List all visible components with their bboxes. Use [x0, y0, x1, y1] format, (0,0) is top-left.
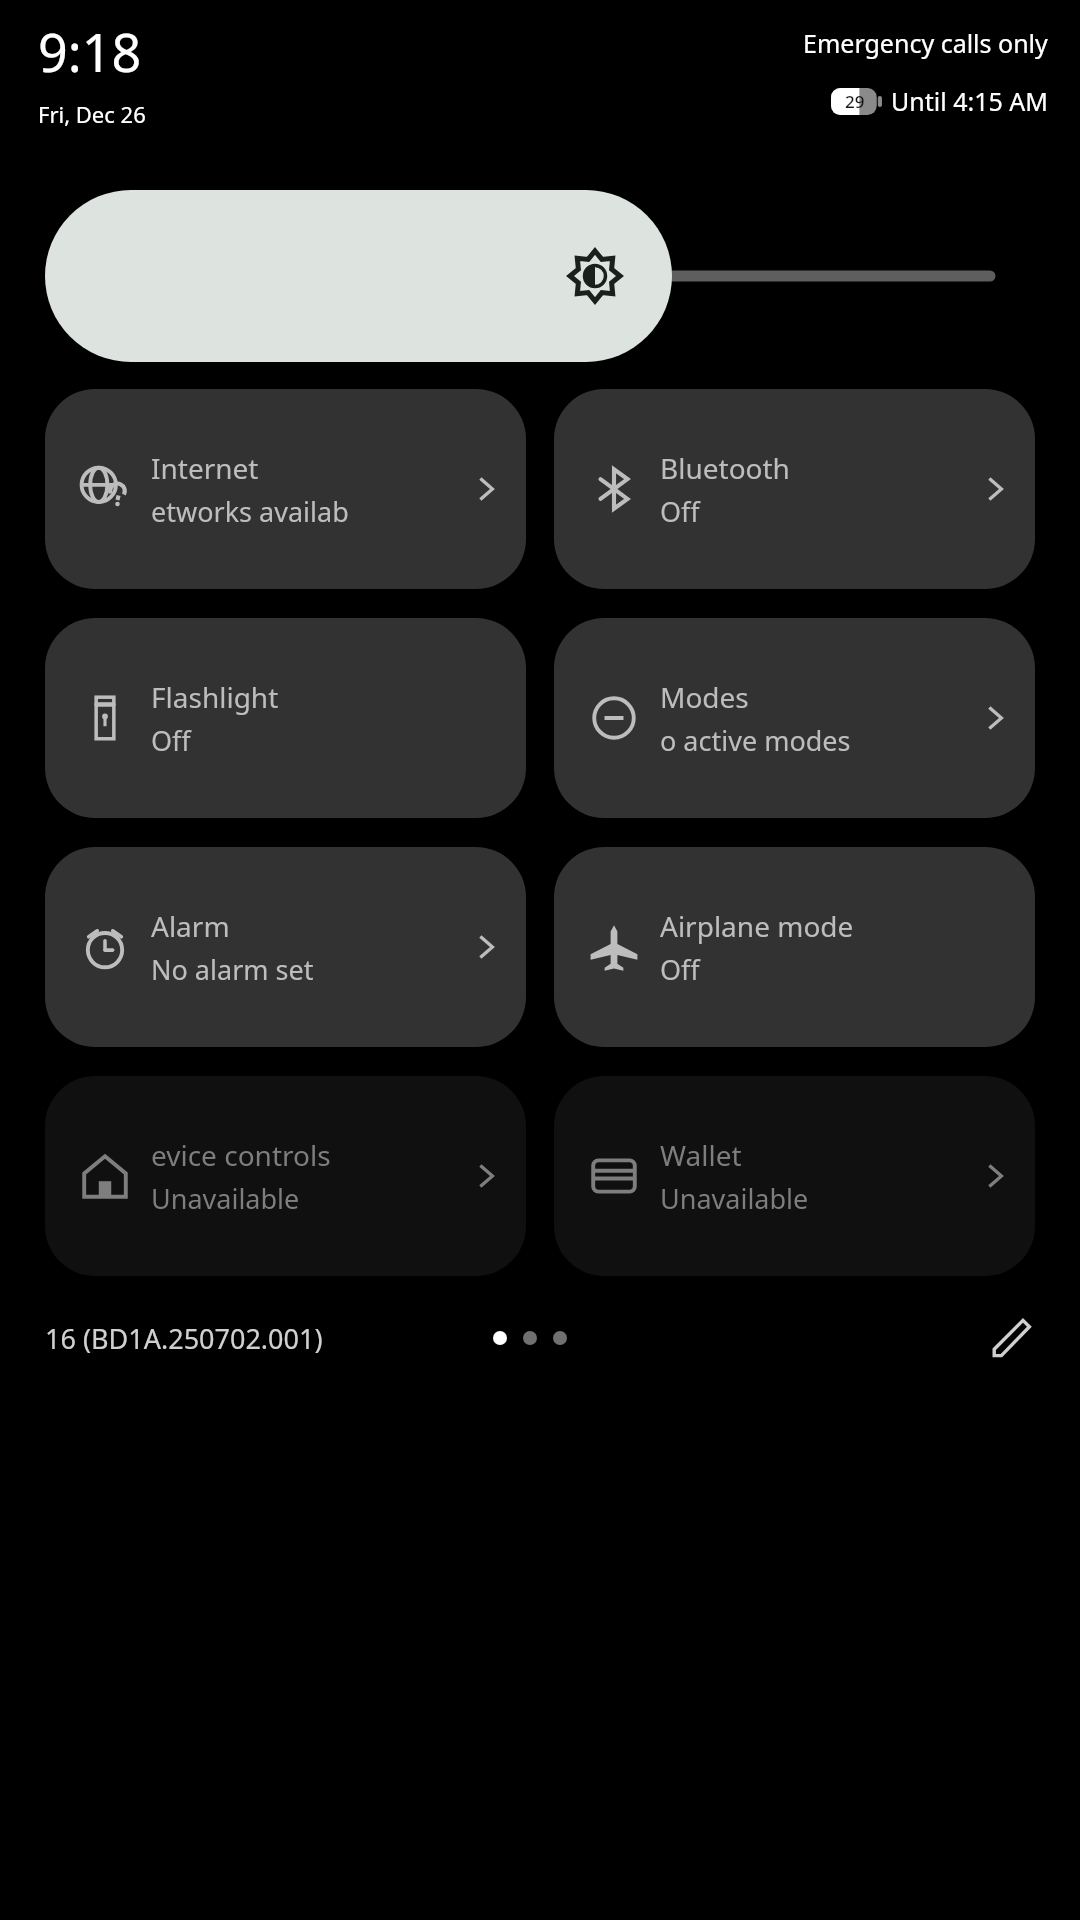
button[interactable]: Brightness [45, 190, 672, 362]
staticText: Wallet [660, 1136, 742, 1174]
button[interactable]: Airplane mode [554, 847, 1035, 1047]
staticText: Off [151, 722, 191, 759]
staticText: Emergency calls only [803, 26, 1048, 60]
staticText: Alarm [151, 907, 230, 945]
staticText: Off [660, 493, 700, 530]
staticText: evice controls [151, 1136, 331, 1174]
staticText: Bluetooth [660, 449, 790, 487]
staticText: Fri, Dec 26 [38, 99, 146, 129]
staticText: Off [660, 951, 700, 988]
staticText: 16 (BD1A.250702.001) [45, 1320, 323, 1357]
staticText: etworks availab [151, 493, 349, 530]
button[interactable]: Edit tiles [982, 1309, 1040, 1367]
staticText: Internet [151, 449, 259, 487]
staticText: 29 [845, 90, 865, 113]
staticText: o active modes [660, 722, 851, 759]
button[interactable]: Battery 29 percent [831, 88, 883, 115]
staticText: Unavailable [151, 1180, 300, 1217]
button[interactable]: Wallet [554, 1076, 1035, 1276]
staticText: No alarm set [151, 951, 314, 988]
button[interactable]: Bluetooth [554, 389, 1035, 589]
staticText: 9:18 [38, 16, 142, 87]
staticText: Unavailable [660, 1180, 809, 1217]
button[interactable]: Flashlight [45, 618, 526, 818]
button[interactable]: Alarm [45, 847, 526, 1047]
button[interactable]: Internet [45, 389, 526, 589]
button[interactable]: evice controls [45, 1076, 526, 1276]
staticText: Until 4:15 AM [891, 84, 1048, 118]
staticText: Modes [660, 678, 749, 716]
staticText: Airplane mode [660, 907, 854, 945]
button[interactable]: Modes [554, 618, 1035, 818]
staticText: Flashlight [151, 678, 279, 716]
